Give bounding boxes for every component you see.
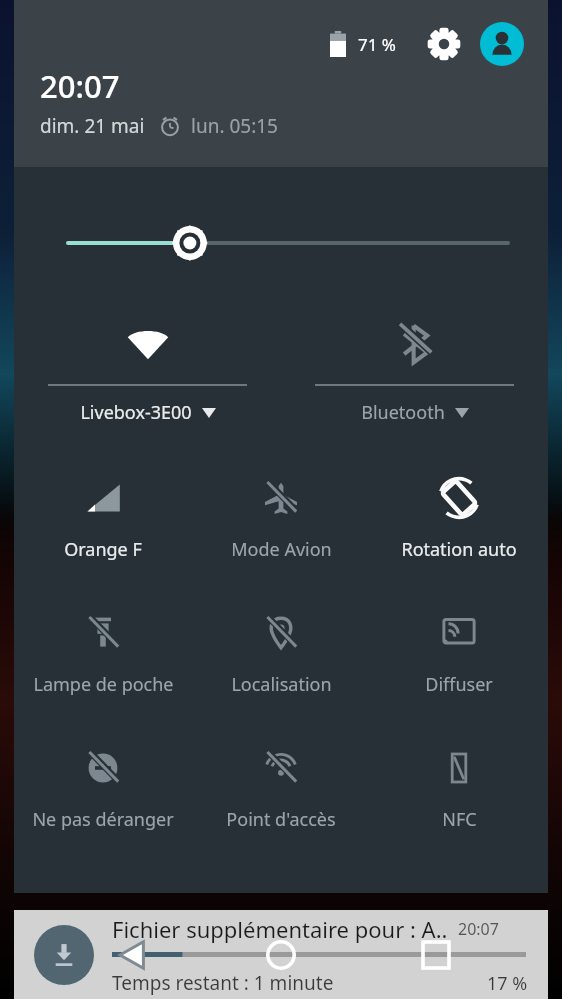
staticText: Temps restant : 1 minute	[112, 970, 487, 996]
staticText: lun. 05:15	[191, 113, 278, 139]
staticText: 17 %	[487, 971, 528, 996]
staticText: 20:07	[40, 65, 120, 107]
staticText: Ne pas déranger	[32, 807, 174, 832]
staticText: Diffuser	[425, 672, 493, 697]
button[interactable]: Settings	[422, 22, 466, 66]
button[interactable]: Point d'accès	[192, 745, 370, 832]
staticText: Fichier supplémentaire pour : A..	[112, 914, 448, 944]
button[interactable]: Back	[106, 929, 158, 981]
button[interactable]: Orange F	[14, 475, 192, 562]
staticText: dim. 21 mai	[40, 113, 145, 139]
staticText: Lampe de poche	[33, 672, 174, 697]
button[interactable]: Localisation	[192, 610, 370, 697]
button[interactable]: Fichier supplémentaire pour : A..	[14, 910, 548, 999]
staticText: NFC	[442, 807, 477, 832]
staticText: 71 %	[358, 33, 396, 56]
button[interactable]: Lampe de poche	[14, 610, 192, 697]
staticText: 20:07	[458, 918, 499, 940]
staticText: Point d'accès	[226, 807, 336, 832]
button[interactable]: Diffuser	[370, 610, 548, 697]
staticText: Localisation	[231, 672, 332, 697]
button[interactable]: Ne pas déranger	[14, 745, 192, 832]
button[interactable]: Recent apps	[410, 929, 462, 981]
button[interactable]: Home	[255, 929, 307, 981]
button[interactable]: Livebox-3E00	[14, 319, 281, 425]
button[interactable]: NFC	[370, 745, 548, 832]
staticText: Bluetooth	[361, 400, 445, 425]
staticText: Rotation auto	[401, 537, 517, 562]
button[interactable]: Brightness	[14, 215, 548, 271]
button[interactable]: Bluetooth	[281, 319, 548, 425]
button[interactable]: Rotation auto	[370, 475, 548, 562]
staticText: Orange F	[64, 537, 142, 562]
button[interactable]: User profile	[480, 22, 524, 66]
button[interactable]: Mode Avion	[192, 475, 370, 562]
staticText: Mode Avion	[231, 537, 332, 562]
staticText: Livebox-3E00	[80, 400, 192, 425]
